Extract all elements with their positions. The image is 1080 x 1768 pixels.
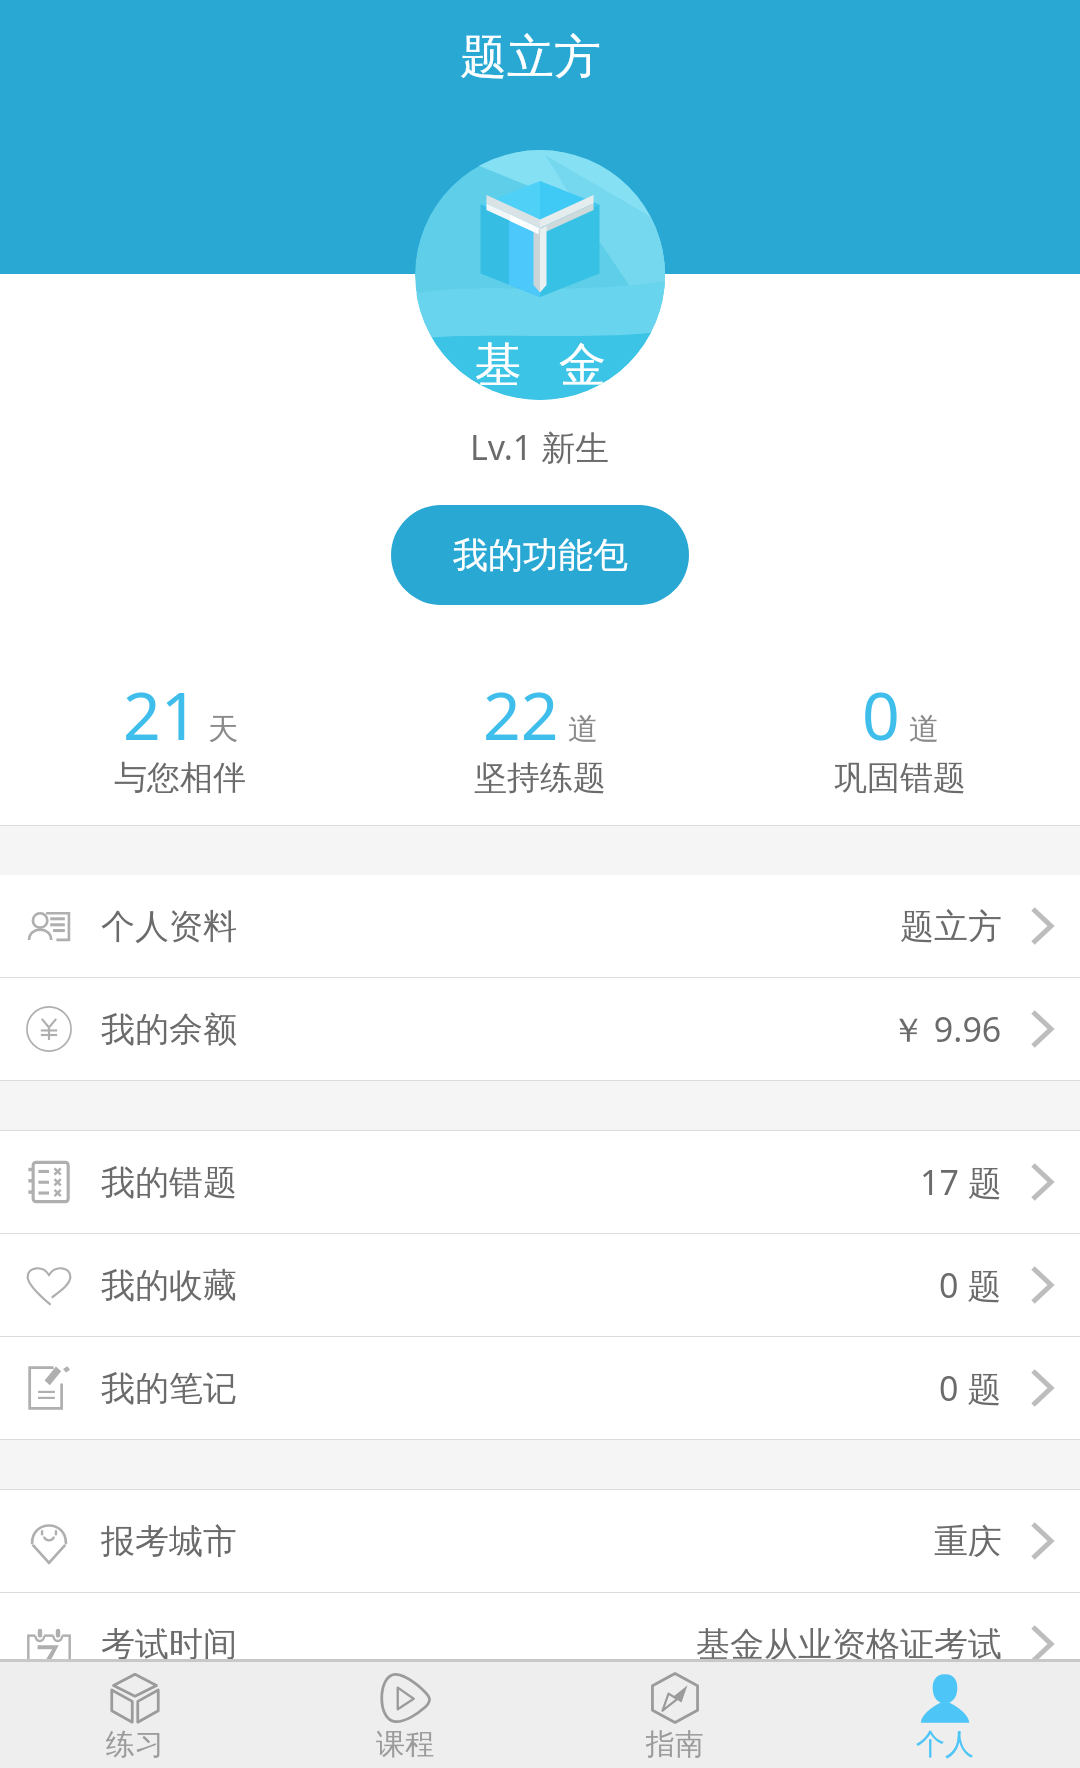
staticText: 我的余额	[101, 1008, 237, 1051]
button[interactable]: 头像	[415, 150, 665, 400]
staticText: 题立方	[460, 28, 601, 87]
staticText: 22	[483, 669, 559, 759]
button[interactable]: 指南	[540, 1662, 810, 1768]
button[interactable]: 我的笔记	[0, 1337, 1080, 1439]
button[interactable]: 考试时间	[0, 1593, 1080, 1695]
staticText: 个人资料	[101, 905, 237, 948]
button[interactable]: 我的错题	[0, 1131, 1080, 1233]
staticText: 课程	[376, 1726, 434, 1763]
staticText: 坚持练题	[474, 757, 606, 799]
button[interactable]: 我的功能包	[391, 505, 689, 605]
staticText: 报考城市	[101, 1520, 237, 1563]
button[interactable]: 我的收藏	[0, 1234, 1080, 1336]
button[interactable]: 报考城市	[0, 1490, 1080, 1592]
staticText: 天	[208, 710, 238, 748]
staticText: 我的收藏	[101, 1264, 237, 1307]
button[interactable]: 个人资料	[0, 875, 1080, 977]
button[interactable]: 个人	[810, 1662, 1080, 1768]
staticText: 道	[568, 710, 598, 748]
staticText: ￥ 9.96	[891, 1006, 1002, 1052]
button[interactable]: 课程	[270, 1662, 540, 1768]
staticText: 指南	[646, 1726, 704, 1763]
staticText: 重庆	[934, 1520, 1002, 1563]
staticText: 我的笔记	[101, 1367, 237, 1410]
staticText: 巩固错题	[834, 757, 966, 799]
staticText: 0 题	[939, 1262, 1002, 1308]
staticText: 0 题	[939, 1365, 1002, 1411]
staticText: Lv.1 新生	[470, 424, 610, 470]
staticText: 0	[862, 669, 900, 759]
staticText: 我的错题	[101, 1161, 237, 1204]
staticText: 道	[909, 710, 939, 748]
staticText: 与您相伴	[114, 757, 246, 799]
staticText: 个人	[916, 1726, 974, 1763]
staticText: 基 金	[475, 331, 606, 395]
staticText: 基金从业资格证考试	[696, 1623, 1002, 1666]
staticText: 我的功能包	[453, 533, 628, 577]
staticText: 题立方	[900, 905, 1002, 948]
button[interactable]: 练习	[0, 1662, 270, 1768]
staticText: 17 题	[920, 1159, 1002, 1205]
staticText: 练习	[106, 1726, 164, 1763]
staticText: 考试时间	[101, 1623, 237, 1666]
staticText: 21	[123, 669, 199, 759]
button[interactable]: 我的余额	[0, 978, 1080, 1080]
